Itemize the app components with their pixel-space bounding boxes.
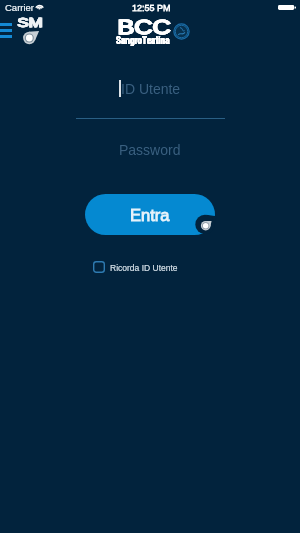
staticText: SangroTeatina <box>116 34 170 46</box>
staticText: SangroTeatina <box>116 34 170 46</box>
staticText: 12:55 PM <box>132 3 171 13</box>
staticText: SM <box>17 15 43 30</box>
staticText: BCC <box>118 15 172 38</box>
staticText: SangroTeatina <box>116 34 170 46</box>
staticText: BCC <box>117 15 171 38</box>
staticText: Carrier <box>5 2 35 13</box>
staticText: SM <box>17 15 43 30</box>
staticText: Entra <box>130 206 170 224</box>
staticText: ID Utente <box>121 81 181 97</box>
staticText: Password <box>119 142 181 158</box>
staticText: Ricorda ID Utente <box>110 263 178 272</box>
staticText: BCC <box>118 15 172 38</box>
staticText: SM <box>18 15 44 30</box>
button[interactable]: ID Utente <box>74 74 226 102</box>
button[interactable]: Entra <box>85 194 215 235</box>
button[interactable]: Ricorda ID Utente <box>93 260 178 274</box>
button[interactable]: Open navigation menu <box>0 23 12 40</box>
button[interactable]: Password <box>74 136 226 164</box>
